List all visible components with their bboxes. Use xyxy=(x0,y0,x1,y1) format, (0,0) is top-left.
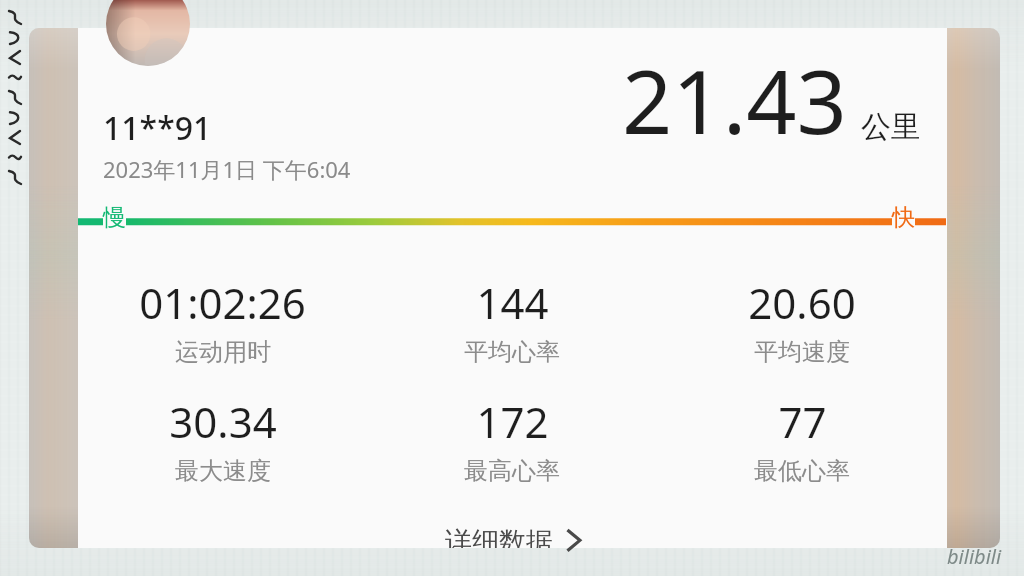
button[interactable]: 01:02:26 xyxy=(78,274,367,367)
button[interactable]: 详细数据 xyxy=(78,525,947,548)
staticText: 最高心率 xyxy=(464,456,560,486)
staticText: 平均心率 xyxy=(464,337,560,367)
staticText: 30.34 xyxy=(169,393,277,450)
staticText: 2023年11月1日 下午6:04 xyxy=(103,154,351,184)
staticText: 最低心率 xyxy=(754,456,850,486)
button[interactable]: 20.60 xyxy=(657,274,947,367)
button[interactable]: 172 xyxy=(367,393,657,486)
button[interactable]: 144 xyxy=(367,274,657,367)
staticText: 平均速度 xyxy=(754,337,850,367)
staticText: 运动用时 xyxy=(175,337,271,367)
staticText: 慢 xyxy=(103,203,126,232)
staticText: 最大速度 xyxy=(175,456,271,486)
staticText: 公里 xyxy=(861,108,921,146)
button[interactable]: 77 xyxy=(657,393,947,486)
staticText: 01:02:26 xyxy=(139,274,306,331)
button[interactable]: User avatar xyxy=(106,0,190,66)
other: Good Luck xyxy=(2,8,28,188)
staticText: bilibili xyxy=(947,543,1002,570)
staticText: 21.43 xyxy=(622,40,847,160)
staticText: 11**91 xyxy=(103,106,212,150)
staticText: 20.60 xyxy=(748,274,856,331)
staticText: 详细数据 xyxy=(445,525,553,548)
staticText: 77 xyxy=(778,393,827,450)
staticText: 144 xyxy=(476,274,549,331)
staticText: 172 xyxy=(476,393,549,450)
button[interactable]: 30.34 xyxy=(78,393,367,486)
staticText: 快 xyxy=(892,203,915,232)
